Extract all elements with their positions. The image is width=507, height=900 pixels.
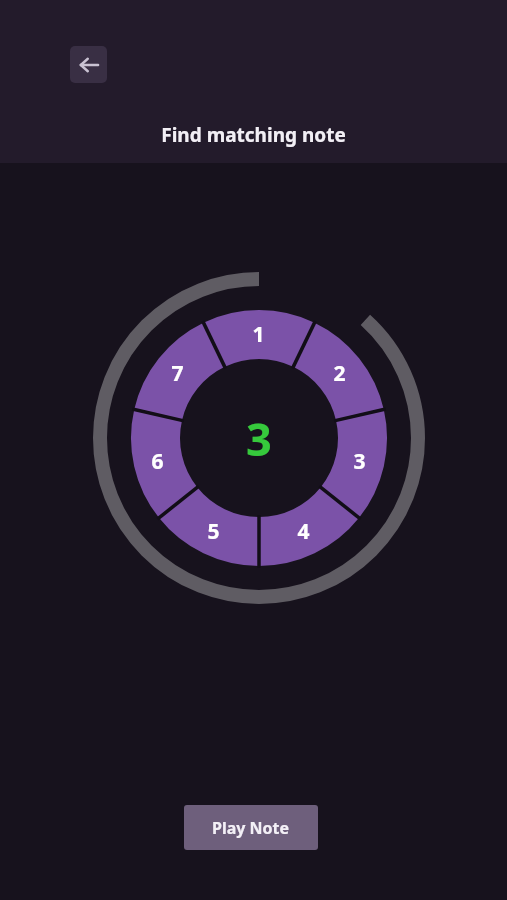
staticText: Play Note	[212, 817, 290, 839]
button[interactable]: Play Note	[184, 805, 318, 850]
button[interactable]: Back	[70, 46, 107, 83]
staticText: Find matching note	[0, 122, 507, 148]
